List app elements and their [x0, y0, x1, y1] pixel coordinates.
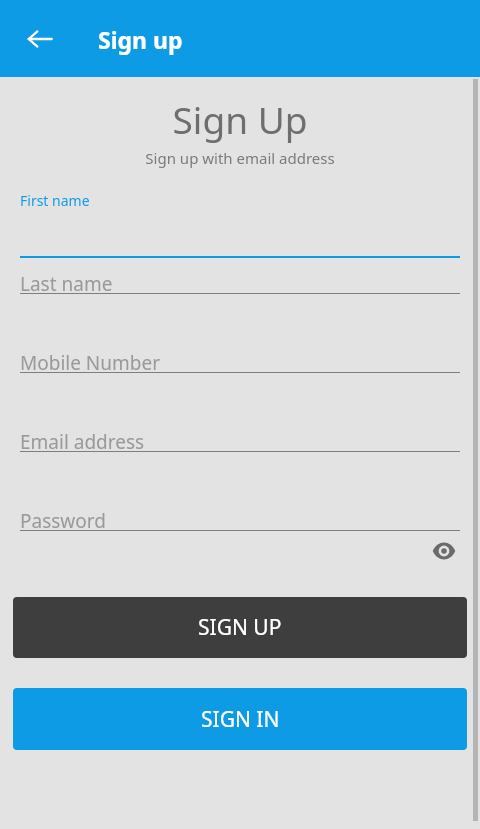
button[interactable]: Password field [20, 504, 460, 556]
button[interactable]: Back [20, 19, 60, 59]
button[interactable]: Show password [428, 535, 460, 567]
staticText: First name [20, 191, 90, 210]
button[interactable]: First name field [20, 177, 460, 237]
staticText: Email address [20, 429, 145, 455]
button[interactable]: SIGN IN [13, 688, 467, 750]
button[interactable]: Email address field [20, 425, 460, 477]
staticText: SIGN IN [201, 705, 280, 734]
staticText: Password [20, 508, 106, 534]
staticText: Sign Up [0, 94, 480, 144]
button[interactable]: SIGN UP [13, 597, 467, 658]
staticText: Sign up [98, 24, 183, 55]
staticText: Mobile Number [20, 350, 161, 376]
staticText: SIGN UP [198, 613, 282, 642]
staticText: Last name [20, 271, 113, 297]
button[interactable]: Last name field [20, 267, 460, 319]
staticText: Sign up with email address [0, 148, 480, 168]
button[interactable]: Mobile Number field [20, 346, 460, 398]
